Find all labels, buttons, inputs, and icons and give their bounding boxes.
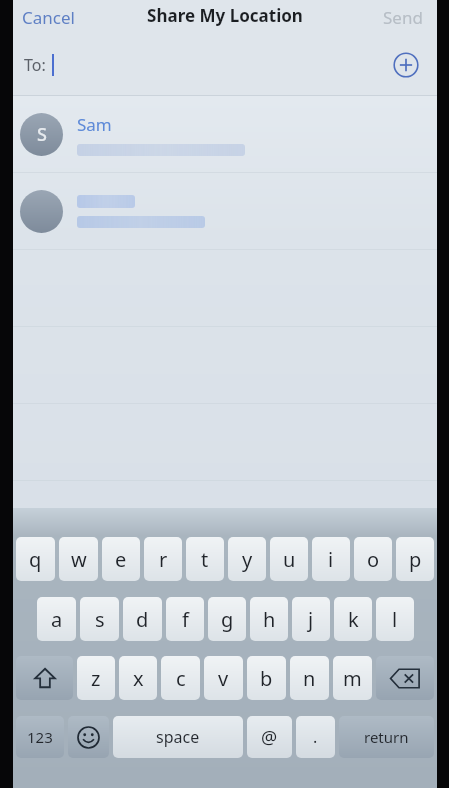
staticText: r <box>159 546 168 573</box>
staticText: Share My Location <box>147 4 303 27</box>
staticText: v <box>218 665 229 692</box>
button[interactable]: space <box>113 716 243 758</box>
button[interactable]: return <box>339 716 434 758</box>
staticText: m <box>343 665 362 692</box>
button[interactable]: Backspace <box>376 656 434 700</box>
button[interactable]: To: <box>13 34 437 96</box>
button[interactable]: 123 <box>16 716 64 758</box>
button[interactable]: Send <box>375 4 437 31</box>
staticText: e <box>115 546 127 573</box>
button[interactable]: i <box>312 537 350 581</box>
staticText: o <box>367 546 380 573</box>
button[interactable]: j <box>292 597 330 641</box>
button[interactable]: d <box>123 597 162 641</box>
staticText: c <box>176 665 186 692</box>
button[interactable]: @ <box>247 716 292 758</box>
staticText: x <box>133 665 144 692</box>
button[interactable]: f <box>166 597 204 641</box>
staticText: p <box>409 546 422 573</box>
staticText: u <box>283 546 296 573</box>
staticText: S <box>37 122 47 147</box>
staticText: j <box>308 606 314 633</box>
staticText: b <box>260 665 273 692</box>
button[interactable]: b <box>247 656 286 700</box>
button[interactable]: c <box>161 656 200 700</box>
staticText: g <box>221 606 234 633</box>
staticText: a <box>51 606 63 633</box>
button[interactable]: g <box>208 597 246 641</box>
staticText: f <box>182 606 189 633</box>
staticText: y <box>242 546 253 573</box>
button[interactable]: Emoji keyboard <box>68 716 109 758</box>
button[interactable]: n <box>290 656 329 700</box>
staticText: return <box>364 727 409 747</box>
staticText: 123 <box>27 727 53 747</box>
button[interactable]: Shift <box>16 656 73 700</box>
staticText: d <box>136 606 149 633</box>
staticText: space <box>156 726 200 748</box>
button[interactable]: Add contact <box>393 52 419 78</box>
button[interactable]: s <box>80 597 119 641</box>
button[interactable]: t <box>186 537 224 581</box>
staticText: k <box>348 606 359 633</box>
button[interactable]: Cancel <box>13 4 83 31</box>
button[interactable]: p <box>396 537 434 581</box>
button[interactable]: r <box>144 537 182 581</box>
button[interactable]: a <box>37 597 76 641</box>
staticText: Sam <box>77 113 112 136</box>
button[interactable]: m <box>333 656 372 700</box>
staticText: To: <box>24 54 46 76</box>
button[interactable]: e <box>102 537 140 581</box>
staticText: h <box>263 606 276 633</box>
staticText: @ <box>261 725 278 750</box>
staticText: z <box>91 665 101 692</box>
staticText: Send <box>383 6 423 29</box>
button[interactable]: x <box>119 656 157 700</box>
button[interactable]: w <box>59 537 98 581</box>
button[interactable]: y <box>228 537 266 581</box>
button[interactable]: k <box>334 597 372 641</box>
staticText: i <box>328 546 334 573</box>
button[interactable]: q <box>16 537 55 581</box>
staticText: s <box>95 606 105 633</box>
staticText: l <box>392 606 398 633</box>
button[interactable]: v <box>204 656 243 700</box>
button[interactable]: S <box>13 96 437 173</box>
staticText: . <box>313 726 318 748</box>
staticText: w <box>71 546 87 573</box>
button[interactable]: u <box>270 537 308 581</box>
button[interactable]: h <box>250 597 288 641</box>
button[interactable]: . <box>296 716 335 758</box>
staticText: n <box>303 665 316 692</box>
button[interactable]: z <box>77 656 115 700</box>
button[interactable]: o <box>354 537 392 581</box>
button[interactable]: l <box>376 597 414 641</box>
button[interactable] <box>13 173 437 250</box>
staticText: t <box>201 546 209 573</box>
staticText: q <box>29 546 42 573</box>
staticText: Cancel <box>22 6 75 29</box>
